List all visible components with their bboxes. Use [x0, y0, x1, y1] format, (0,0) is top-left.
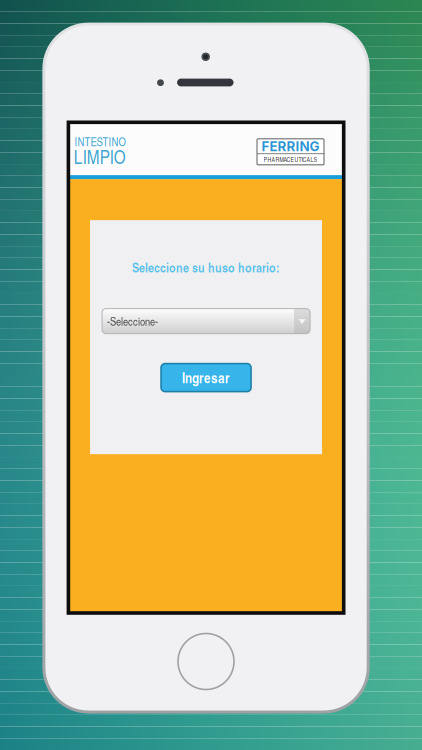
staticText: FERRING	[261, 138, 319, 154]
staticText: PHARMACEUTICALS	[263, 155, 317, 164]
staticText: -Seleccione-	[107, 313, 158, 329]
staticText: LIMPIO	[74, 144, 126, 169]
staticText: Ingresar	[182, 367, 230, 388]
staticText: INTESTINO	[74, 134, 125, 149]
button[interactable]: -Seleccione-	[102, 309, 310, 334]
staticText: Seleccione su huso horario:	[132, 258, 280, 277]
button[interactable]: Ingresar	[161, 364, 251, 392]
